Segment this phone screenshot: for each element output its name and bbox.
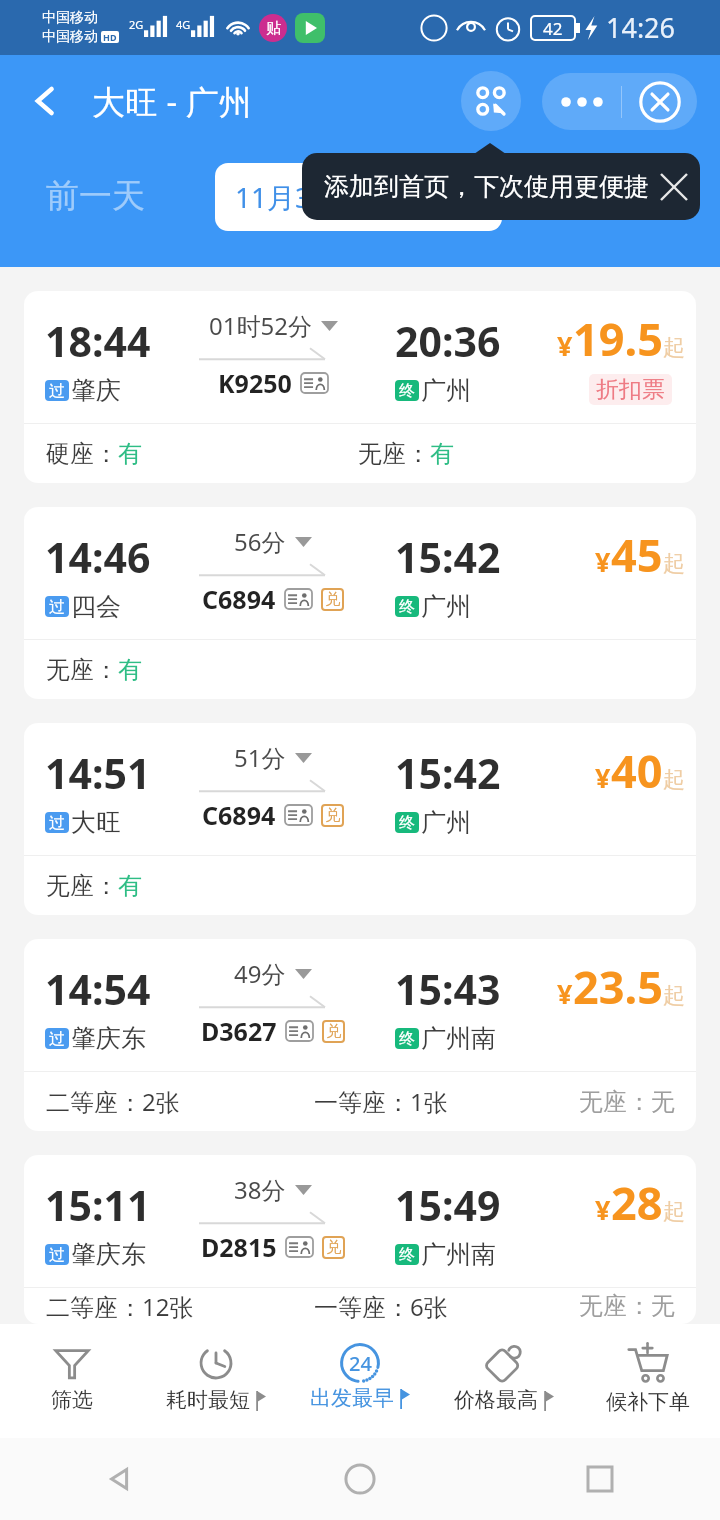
staticText: 有	[118, 871, 142, 901]
staticText: 候补下单	[606, 1389, 690, 1415]
button[interactable]: 14:51	[24, 723, 696, 915]
staticText: HD	[103, 31, 117, 43]
button[interactable]: Mini program menu	[461, 71, 521, 131]
button[interactable]: 11月30日 周五	[215, 163, 502, 231]
staticText: 无座：无	[579, 1291, 675, 1321]
staticText: 14:54	[45, 961, 151, 1017]
staticText: ¥	[595, 1191, 611, 1228]
staticText: 大旺	[71, 807, 121, 838]
staticText: 兑	[325, 590, 340, 609]
staticText: 贴	[266, 19, 281, 38]
staticText: 折扣票	[596, 375, 665, 404]
staticText: 广州	[421, 375, 471, 406]
button[interactable]: Back	[16, 72, 74, 130]
staticText: 终	[399, 381, 415, 401]
staticText: 无座：	[46, 871, 118, 901]
staticText: 一等座：1张	[314, 1085, 448, 1118]
staticText: 起	[663, 334, 685, 362]
staticText: 14:26	[606, 9, 676, 46]
staticText: 肇庆东	[71, 1023, 146, 1054]
button[interactable]: 24	[288, 1324, 432, 1430]
staticText: 后一天	[581, 175, 680, 217]
staticText: 15:42	[395, 745, 501, 801]
staticText: 耗时最短	[166, 1387, 250, 1413]
staticText: 2G	[129, 17, 144, 32]
button[interactable]: Home	[240, 1438, 480, 1520]
staticText: 14:46	[45, 529, 151, 585]
staticText: 15:49	[395, 1177, 501, 1233]
staticText: 前一天	[46, 175, 145, 217]
button[interactable]: 15:11	[24, 1155, 696, 1324]
staticText: 终	[399, 1029, 415, 1049]
staticText: 有	[118, 439, 142, 469]
staticText: 终	[399, 813, 415, 833]
button[interactable]: 筛选	[0, 1324, 144, 1430]
staticText: 中国移动	[42, 9, 98, 27]
staticText: D2815	[201, 1230, 277, 1264]
staticText: 价格最高	[454, 1387, 538, 1413]
staticText: 添加到首页，下次使用更便捷	[324, 171, 649, 202]
staticText: 广州	[421, 807, 471, 838]
staticText: 过	[49, 1245, 65, 1265]
staticText: 广州南	[421, 1239, 496, 1270]
staticText: 15:11	[45, 1177, 151, 1233]
staticText: D3627	[201, 1014, 277, 1048]
staticText: 起	[663, 766, 685, 794]
staticText: 14:51	[45, 745, 151, 801]
staticText: 肇庆东	[71, 1239, 146, 1270]
button[interactable]: 价格最高	[432, 1324, 576, 1430]
staticText: 大旺 - 广州	[92, 79, 252, 124]
button[interactable]: 14:46	[24, 507, 696, 699]
button[interactable]: Close	[622, 73, 697, 130]
button[interactable]: 后一天	[550, 147, 710, 245]
staticText: 兑	[326, 1238, 341, 1257]
staticText: 无座：无	[579, 1087, 675, 1117]
staticText: 49分	[234, 957, 286, 990]
button[interactable]: 14:54	[24, 939, 696, 1131]
staticText: 兑	[326, 1022, 341, 1041]
staticText: 起	[663, 1198, 685, 1226]
staticText: 51分	[234, 741, 286, 774]
staticText: K9250	[218, 366, 292, 400]
button[interactable]: 候补下单	[576, 1324, 720, 1430]
staticText: 19.5	[573, 308, 663, 369]
staticText: 中国移动	[42, 28, 98, 46]
button[interactable]: Dismiss	[649, 162, 699, 212]
staticText: ¥	[557, 975, 573, 1012]
staticText: 起	[663, 550, 685, 578]
button[interactable]: Back	[0, 1438, 240, 1520]
button[interactable]: 前一天	[20, 147, 170, 245]
staticText: ¥	[595, 543, 611, 580]
staticText: C6894	[202, 582, 276, 616]
button[interactable]: Recents	[480, 1438, 720, 1520]
staticText: 四会	[71, 591, 121, 622]
staticText: ¥	[557, 327, 573, 364]
staticText: 45	[611, 524, 663, 585]
staticText: 有	[118, 655, 142, 685]
staticText: ¥	[595, 759, 611, 796]
staticText: 18:44	[45, 313, 151, 369]
staticText: 15:43	[395, 961, 501, 1017]
staticText: 广州南	[421, 1023, 496, 1054]
staticText: 20:36	[395, 313, 501, 369]
staticText: 40	[611, 740, 663, 801]
staticText: 二等座：12张	[46, 1290, 194, 1323]
staticText: 终	[399, 1245, 415, 1265]
staticText: 出发最早	[310, 1385, 394, 1411]
staticText: 4G	[176, 17, 191, 32]
button[interactable]: More	[542, 73, 621, 130]
button[interactable]: 18:44	[24, 291, 696, 483]
staticText: 01时52分	[209, 309, 312, 342]
staticText: 二等座：2张	[46, 1085, 180, 1118]
button[interactable]: 耗时最短	[144, 1324, 288, 1430]
staticText: 23.5	[573, 956, 663, 1017]
staticText: 24	[349, 1350, 372, 1377]
staticText: 38分	[234, 1173, 286, 1206]
staticText: 无座：	[46, 655, 118, 685]
staticText: 过	[49, 813, 65, 833]
staticText: 肇庆	[71, 375, 121, 406]
staticText: 一等座：6张	[314, 1290, 448, 1323]
staticText: 42	[543, 17, 563, 40]
staticText: 56分	[234, 525, 286, 558]
staticText: 过	[49, 597, 65, 617]
